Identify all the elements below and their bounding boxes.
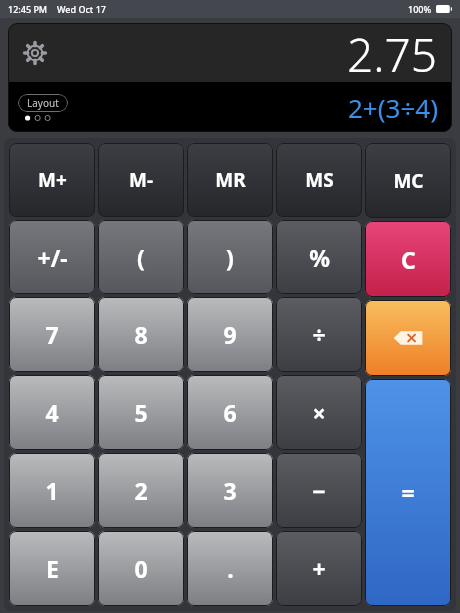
button[interactable]: ) (187, 220, 273, 294)
staticText: E (46, 553, 59, 584)
staticText: Wed Oct 17 (57, 3, 106, 15)
staticText: M+ (38, 167, 67, 193)
button[interactable]: MC (365, 143, 451, 218)
button[interactable]: 2 (98, 453, 184, 528)
staticText: MC (393, 168, 424, 194)
button[interactable]: + (276, 531, 362, 606)
staticText: 5 (134, 397, 148, 428)
button[interactable]: +/- (9, 220, 95, 294)
button[interactable]: = (365, 379, 451, 606)
staticText: 2 (134, 475, 148, 506)
staticText: 3 (223, 475, 237, 506)
button[interactable]: 8 (98, 297, 184, 372)
button[interactable]: C (365, 221, 451, 297)
button[interactable]: MS (276, 143, 362, 217)
button[interactable]: − (276, 453, 362, 528)
staticText: ( (137, 242, 145, 273)
button[interactable]: % (276, 220, 362, 294)
button[interactable]: 9 (187, 297, 273, 372)
staticText: 1 (45, 475, 59, 506)
button[interactable]: 4 (9, 375, 95, 450)
staticText: 9 (223, 319, 237, 350)
button[interactable]: ( (98, 220, 184, 294)
button[interactable]: 7 (9, 297, 95, 372)
button[interactable]: M+ (9, 143, 95, 217)
staticText: 0 (134, 553, 148, 584)
staticText: 6 (223, 397, 237, 428)
staticText: MR (215, 167, 246, 193)
button[interactable]: 5 (98, 375, 184, 450)
staticText: C (401, 244, 416, 275)
staticText: 2.75 (347, 23, 438, 82)
button[interactable]: M- (98, 143, 184, 217)
staticText: − (312, 475, 326, 506)
staticText: ÷ (312, 319, 326, 350)
staticText: M- (129, 167, 153, 193)
staticText: + (312, 553, 326, 584)
staticText: 8 (134, 319, 148, 350)
staticText: 100% (408, 3, 432, 15)
staticText: +/- (37, 242, 68, 273)
staticText: % (309, 242, 330, 273)
button[interactable]: Layout (18, 94, 68, 112)
button[interactable]: . (187, 531, 273, 606)
staticText: = (401, 477, 415, 508)
button[interactable]: 1 (9, 453, 95, 528)
staticText: . (227, 553, 234, 584)
staticText: Layout (27, 96, 59, 110)
staticText: × (312, 397, 326, 428)
button[interactable]: E (9, 531, 95, 606)
button[interactable]: 6 (187, 375, 273, 450)
staticText: ) (226, 242, 234, 273)
button[interactable]: Backspace (365, 300, 451, 376)
button[interactable]: MR (187, 143, 273, 217)
staticText: 4 (45, 397, 59, 428)
staticText: MS (305, 167, 334, 193)
button[interactable]: × (276, 375, 362, 450)
button[interactable]: 0 (98, 531, 184, 606)
staticText: 7 (45, 319, 59, 350)
button[interactable]: ÷ (276, 297, 362, 372)
staticText: 2+(3÷4) (348, 90, 438, 125)
staticText: 12:45 PM (8, 3, 48, 15)
button[interactable]: 3 (187, 453, 273, 528)
button[interactable]: Settings (20, 38, 50, 68)
